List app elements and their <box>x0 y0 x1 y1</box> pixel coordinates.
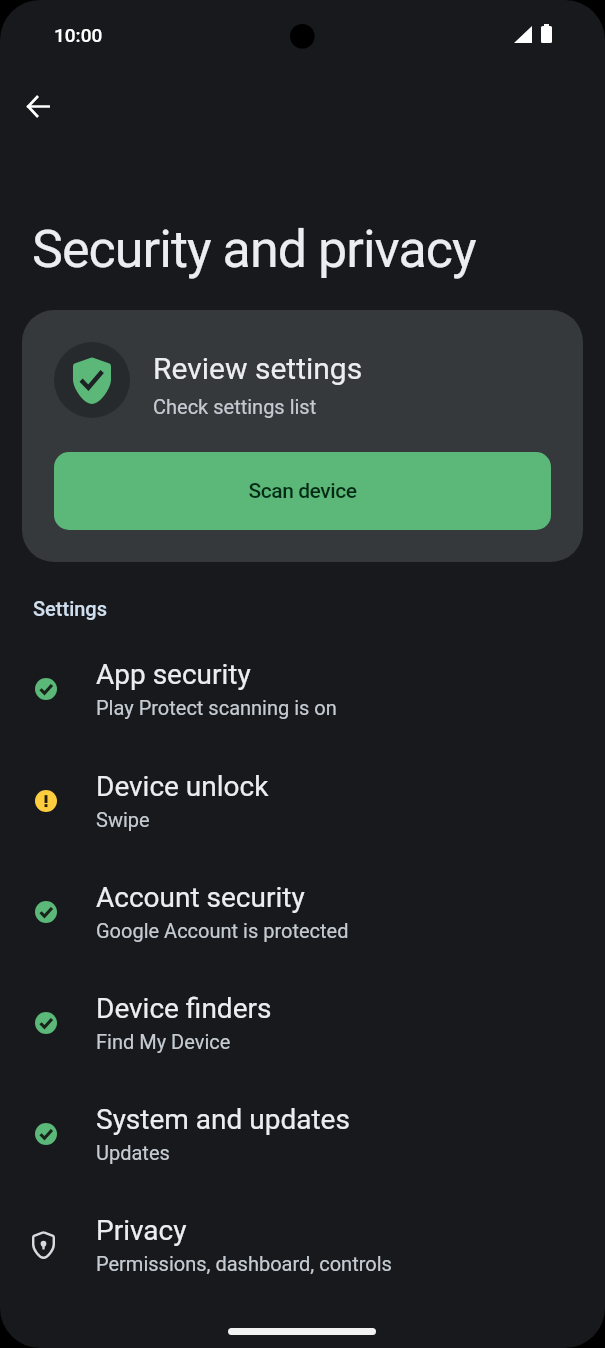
staticText: Swipe <box>96 808 150 831</box>
staticText: Check settings list <box>153 395 317 418</box>
staticText: Scan device <box>248 479 357 504</box>
staticText: Play Protect scanning is on <box>96 696 337 719</box>
staticText: Review settings <box>153 351 363 386</box>
button[interactable]: Privacy <box>0 1189 605 1300</box>
button[interactable]: App security <box>0 633 605 744</box>
staticText: App security <box>96 658 251 691</box>
button[interactable]: Device finders <box>0 967 605 1078</box>
staticText: Device finders <box>96 992 272 1025</box>
button[interactable]: Device unlock <box>0 745 605 856</box>
button[interactable]: Review settings <box>22 310 583 562</box>
staticText: Find My Device <box>96 1030 231 1053</box>
button[interactable]: Scan device <box>54 452 551 530</box>
button[interactable]: Account security <box>0 856 605 967</box>
button[interactable]: System and updates <box>0 1078 605 1189</box>
staticText: Permissions, dashboard, controls <box>96 1252 392 1275</box>
staticText: Device unlock <box>96 770 269 803</box>
staticText: Updates <box>96 1141 170 1164</box>
staticText: System and updates <box>96 1103 350 1136</box>
staticText: Google Account is protected <box>96 919 349 942</box>
staticText: Account security <box>96 881 305 914</box>
staticText: Settings <box>33 597 108 620</box>
button[interactable]: Back <box>14 82 62 130</box>
staticText: 10:00 <box>54 24 103 46</box>
staticText: Privacy <box>96 1214 187 1247</box>
staticText: Security and privacy <box>32 219 476 280</box>
